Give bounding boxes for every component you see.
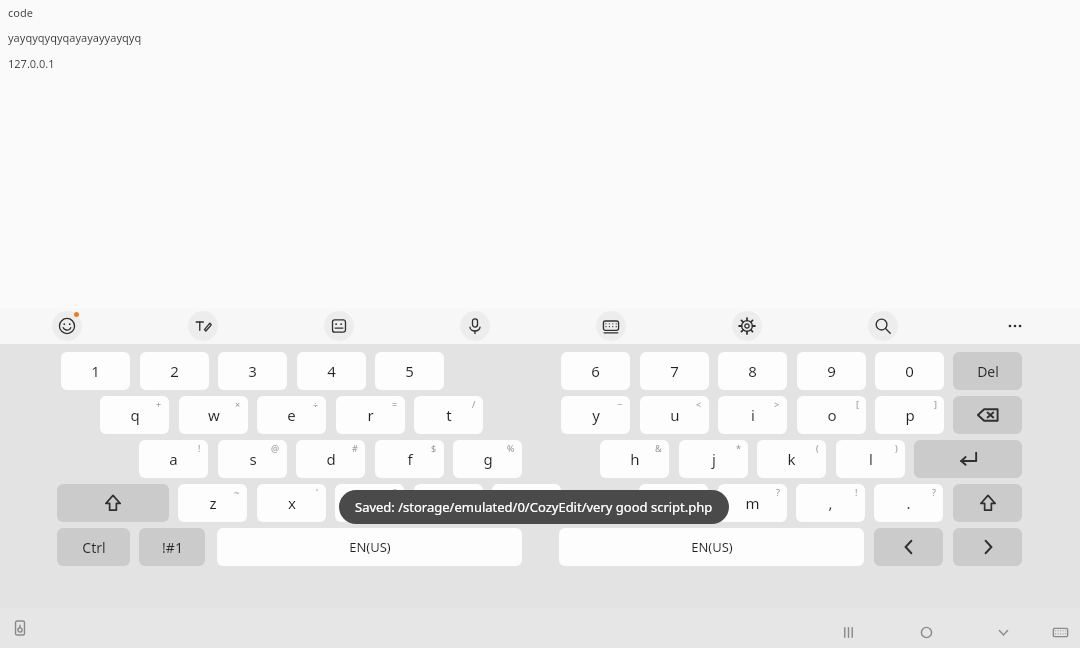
- button[interactable]: o: [797, 396, 866, 434]
- button[interactable]: i: [718, 396, 787, 434]
- button[interactable]: Hide keyboard: [987, 616, 1019, 648]
- button[interactable]: 7: [640, 352, 709, 390]
- button[interactable]: 3: [218, 352, 287, 390]
- staticText: x: [288, 493, 296, 513]
- button[interactable]: t: [414, 396, 483, 434]
- button[interactable]: Voice input: [460, 311, 490, 341]
- staticText: o: [827, 405, 837, 425]
- button[interactable]: Keyboard mode: [596, 311, 626, 341]
- button[interactable]: Change keyboard: [1044, 616, 1076, 648]
- staticText: yayqyqyqyqayayayyayqyq: [8, 30, 142, 45]
- staticText: c: [366, 493, 374, 513]
- button[interactable]: v: [414, 484, 483, 522]
- button[interactable]: Shift: [953, 484, 1022, 522]
- button[interactable]: r: [336, 396, 405, 434]
- button[interactable]: k: [757, 440, 826, 478]
- staticText: t: [446, 405, 452, 425]
- staticText: .: [906, 493, 911, 513]
- button[interactable]: Move cursor right: [953, 528, 1022, 566]
- staticText: Saved: /storage/emulated/0/CozyEdit/very…: [355, 498, 713, 516]
- button[interactable]: EN(US): [217, 528, 522, 566]
- button[interactable]: w: [179, 396, 248, 434]
- staticText: =: [392, 398, 398, 410]
- button[interactable]: Ctrl: [57, 528, 130, 566]
- staticText: ×: [235, 398, 241, 410]
- staticText: h: [630, 449, 640, 469]
- staticText: m: [745, 493, 760, 513]
- button[interactable]: Shift: [57, 484, 169, 522]
- staticText: !: [855, 486, 858, 498]
- button[interactable]: Del: [953, 352, 1022, 390]
- staticText: :: [473, 486, 476, 498]
- button[interactable]: ,: [796, 484, 865, 522]
- button[interactable]: Recents: [832, 616, 864, 648]
- staticText: q: [130, 405, 140, 425]
- button[interactable]: 5: [375, 352, 444, 390]
- button[interactable]: a: [139, 440, 208, 478]
- button[interactable]: n: [639, 484, 708, 522]
- staticText: EN(US): [349, 538, 391, 556]
- staticText: #: [352, 442, 358, 454]
- button[interactable]: l: [836, 440, 905, 478]
- button[interactable]: Move cursor left: [874, 528, 943, 566]
- staticText: 8: [748, 361, 757, 381]
- button[interactable]: Home: [910, 616, 942, 648]
- staticText: [: [856, 398, 859, 410]
- staticText: v: [445, 493, 453, 513]
- button[interactable]: f: [375, 440, 444, 478]
- button[interactable]: 9: [797, 352, 866, 390]
- staticText: k: [787, 449, 796, 469]
- button[interactable]: .: [874, 484, 943, 522]
- button[interactable]: z: [178, 484, 247, 522]
- button[interactable]: Handwriting: [188, 311, 218, 341]
- staticText: n: [669, 493, 679, 513]
- button[interactable]: y: [561, 396, 630, 434]
- button[interactable]: s: [218, 440, 287, 478]
- button[interactable]: u: [640, 396, 709, 434]
- button[interactable]: 2: [140, 352, 209, 390]
- button[interactable]: Enter: [914, 440, 1022, 478]
- button[interactable]: 4: [297, 352, 366, 390]
- staticText: 6: [591, 361, 600, 381]
- button[interactable]: g: [453, 440, 522, 478]
- button[interactable]: d: [296, 440, 365, 478]
- staticText: ÷: [313, 398, 319, 410]
- staticText: &: [655, 442, 662, 454]
- button[interactable]: b: [492, 484, 561, 522]
- button[interactable]: h: [600, 440, 669, 478]
- button[interactable]: e: [257, 396, 326, 434]
- staticText: >: [774, 398, 780, 410]
- staticText: ~: [234, 486, 240, 498]
- button[interactable]: Sticker: [324, 311, 354, 341]
- button[interactable]: j: [679, 440, 748, 478]
- staticText: 7: [670, 361, 679, 381]
- staticText: Ctrl: [82, 538, 106, 557]
- staticText: −: [617, 398, 623, 410]
- button[interactable]: !#1: [139, 528, 205, 566]
- button[interactable]: Clipboard: [8, 616, 32, 640]
- button[interactable]: Backspace: [953, 396, 1022, 434]
- button[interactable]: 0: [875, 352, 944, 390]
- staticText: 127.0.0.1: [8, 56, 55, 71]
- staticText: l: [869, 449, 873, 469]
- staticText: f: [407, 449, 413, 469]
- button[interactable]: q: [100, 396, 169, 434]
- staticText: a: [169, 449, 178, 469]
- staticText: z: [209, 493, 217, 513]
- staticText: ": [393, 486, 397, 498]
- button[interactable]: p: [875, 396, 944, 434]
- button[interactable]: EN(US): [559, 528, 864, 566]
- staticText: ;: [551, 486, 554, 498]
- staticText: 2: [170, 361, 179, 381]
- button[interactable]: 1: [61, 352, 130, 390]
- button[interactable]: 8: [718, 352, 787, 390]
- button[interactable]: More options: [1000, 311, 1030, 341]
- button[interactable]: m: [718, 484, 787, 522]
- staticText: *: [736, 442, 741, 454]
- button[interactable]: 6: [561, 352, 630, 390]
- button[interactable]: x: [257, 484, 326, 522]
- button[interactable]: Emoji: [52, 311, 82, 341]
- button[interactable]: Search: [868, 311, 898, 341]
- button[interactable]: c: [335, 484, 404, 522]
- button[interactable]: Settings: [732, 311, 762, 341]
